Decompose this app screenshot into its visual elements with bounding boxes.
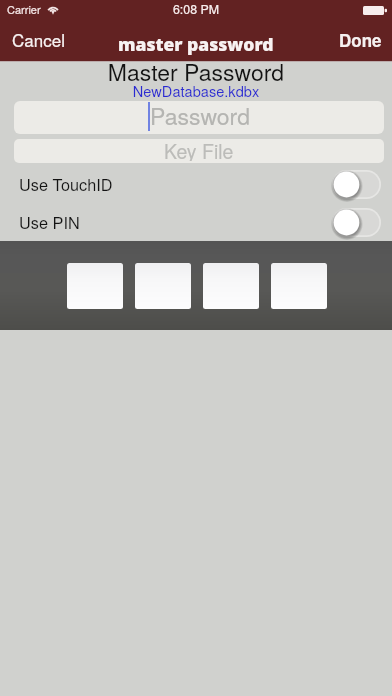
staticText: Password [150, 101, 251, 132]
staticText: Carrier [7, 1, 41, 17]
staticText: Master Password [0, 55, 392, 88]
button[interactable]: Key File [14, 139, 384, 163]
staticText: 6:08 PM [0, 0, 392, 18]
button[interactable]: Done [327, 24, 392, 58]
button[interactable]: Key [271, 263, 327, 309]
staticText: Cancel [12, 27, 65, 51]
button[interactable]: Password [14, 101, 384, 134]
staticText: Done [339, 28, 382, 52]
button[interactable]: Key [203, 263, 259, 309]
button[interactable]: Key [135, 263, 191, 309]
staticText: Use TouchID [19, 172, 113, 195]
button[interactable]: Key [67, 263, 123, 309]
staticText: Key File [164, 139, 234, 161]
button[interactable]: Use PIN [0, 203, 392, 241]
button[interactable]: Cancel [0, 23, 77, 57]
staticText: Use PIN [19, 210, 80, 233]
button[interactable]: Use TouchID [0, 165, 392, 203]
staticText: master password [118, 32, 274, 56]
staticText: NewDatabase.kdbx [0, 80, 392, 101]
